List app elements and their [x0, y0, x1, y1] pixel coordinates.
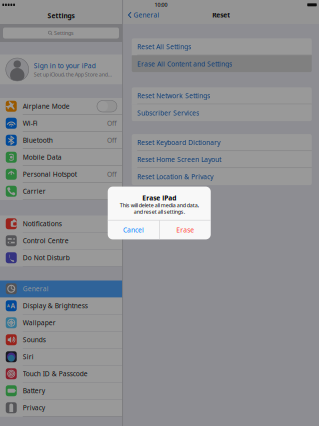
staticText: Carrier: [23, 187, 46, 196]
button[interactable]: Reset Home Screen Layout: [132, 151, 312, 168]
button[interactable]: Notifications: [0, 215, 122, 232]
staticText: Settings: [54, 29, 74, 37]
staticText: Privacy: [23, 403, 45, 412]
button[interactable]: Airplane Mode: [0, 98, 122, 115]
button[interactable]: Subscriber Services: [132, 104, 312, 121]
staticText: A: [11, 301, 16, 310]
button[interactable]: Carrier: [0, 183, 122, 200]
button[interactable]: Reset Keyboard Dictionary: [132, 134, 312, 151]
staticText: Mobile Data: [23, 153, 62, 162]
staticText: Reset Location & Privacy: [137, 172, 213, 181]
button[interactable]: Wallpaper: [0, 314, 122, 331]
staticText: Off: [107, 119, 117, 128]
button[interactable]: Sign in to your iPad: [0, 54, 122, 84]
staticText: Siri: [23, 352, 34, 361]
staticText: Reset Network Settings: [137, 91, 210, 100]
button[interactable]: General: [123, 10, 159, 20]
button[interactable]: A: [0, 297, 122, 314]
button[interactable]: Battery: [0, 382, 122, 399]
staticText: Sign in to your iPad: [34, 61, 96, 70]
staticText: Sounds: [23, 335, 46, 344]
staticText: Off: [107, 136, 117, 145]
staticText: Wi-Fi: [23, 119, 38, 128]
button[interactable]: Cancel: [108, 220, 159, 239]
button[interactable]: Touch ID & Passcode: [0, 365, 122, 382]
button[interactable]: Do Not Disturb: [0, 249, 122, 266]
button[interactable]: Reset All Settings: [132, 38, 312, 55]
button[interactable]: Erase: [159, 220, 211, 239]
staticText: and reset all settings.: [134, 208, 185, 215]
staticText: 10:00: [155, 1, 168, 8]
button[interactable]: Wi-Fi: [0, 115, 122, 132]
staticText: Erase: [176, 225, 194, 234]
staticText: Reset Keyboard Dictionary: [137, 138, 220, 147]
button[interactable]: Bluetooth: [0, 132, 122, 149]
staticText: Cancel: [123, 225, 144, 234]
staticText: Settings: [47, 11, 74, 20]
button[interactable]: Mobile Data: [0, 149, 122, 166]
staticText: Control Centre: [23, 236, 69, 245]
staticText: Off: [107, 170, 117, 179]
staticText: Display & Brightness: [23, 301, 88, 310]
button[interactable]: Reset Location & Privacy: [132, 168, 312, 185]
staticText: Do Not Disturb: [23, 253, 70, 262]
button[interactable]: Personal Hotspot: [0, 166, 122, 183]
staticText: General: [23, 284, 49, 293]
staticText: Set up iCloud, the App Store and…: [34, 71, 112, 78]
staticText: Battery: [23, 386, 45, 395]
button[interactable]: Control Centre: [0, 232, 122, 249]
staticText: Subscriber Services: [137, 108, 199, 117]
staticText: Notifications: [23, 219, 62, 228]
staticText: A: [7, 303, 10, 308]
button[interactable]: Privacy: [0, 399, 122, 416]
staticText: Airplane Mode: [23, 102, 70, 111]
staticText: Wallpaper: [23, 318, 56, 327]
button[interactable]: Siri: [0, 348, 122, 365]
staticText: This will delete all media and data,: [120, 202, 199, 209]
staticText: Erase iPad: [142, 193, 176, 202]
staticText: Touch ID & Passcode: [23, 369, 88, 378]
staticText: Reset: [212, 11, 230, 19]
staticText: General: [134, 11, 160, 19]
button[interactable]: Reset Network Settings: [132, 87, 312, 104]
staticText: Bluetooth: [23, 136, 53, 145]
button[interactable]: Erase All Content and Settings: [132, 55, 312, 72]
button[interactable]: Sounds: [0, 331, 122, 348]
staticText: Reset All Settings: [137, 42, 191, 51]
button[interactable]: General: [0, 280, 122, 297]
staticText: Reset Home Screen Layout: [137, 155, 221, 164]
staticText: Personal Hotspot: [23, 170, 77, 179]
staticText: Erase All Content and Settings: [137, 59, 232, 68]
